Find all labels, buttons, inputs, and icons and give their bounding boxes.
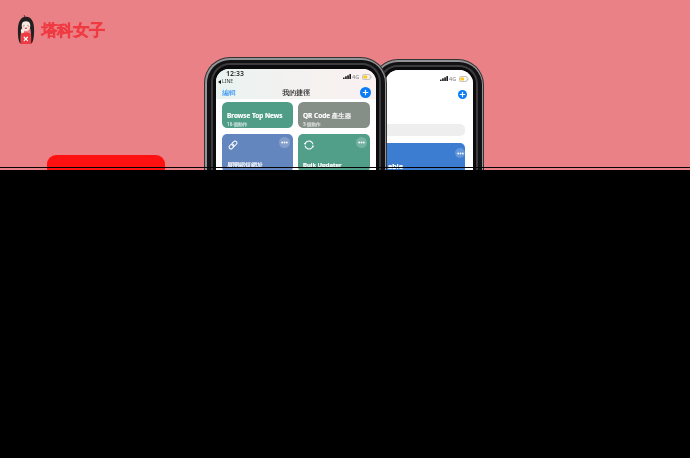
staticText: 4G <box>352 73 360 80</box>
button[interactable]: QR Code 產生器 <box>298 102 370 128</box>
button[interactable]: More options <box>222 134 293 170</box>
button[interactable]: More options <box>298 134 370 170</box>
staticText: able <box>388 162 403 170</box>
staticText: QR Code 產生器 <box>303 111 352 120</box>
button[interactable]: More options <box>279 137 290 148</box>
staticText: 4G <box>449 75 457 82</box>
staticText: 我的捷徑 <box>282 88 310 97</box>
staticText: 12:33 <box>226 69 244 79</box>
button[interactable]: Browse Top News <box>222 102 293 128</box>
button[interactable]: More options <box>455 148 465 158</box>
staticText: 編輯 <box>222 88 236 97</box>
button[interactable]: Add shortcut <box>360 87 371 98</box>
staticText: Bulk Updater <box>303 161 342 169</box>
button[interactable]: Add shortcut <box>458 90 467 99</box>
staticText: 3 個動作 <box>303 121 321 127</box>
staticText: Browse Top News <box>227 111 283 120</box>
staticText: LINE <box>222 78 234 85</box>
button[interactable]: More options <box>385 143 465 170</box>
button[interactable]: More options <box>356 137 367 148</box>
staticText: 16 個動作 <box>227 121 248 127</box>
staticText: 塔科女子 <box>41 21 105 41</box>
staticText: 展開縮短網址 <box>227 161 263 169</box>
